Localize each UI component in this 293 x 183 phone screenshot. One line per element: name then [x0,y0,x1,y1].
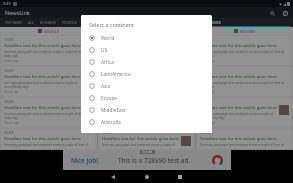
staticText: ENTERTAINMENT [103,20,131,25]
button[interactable]: SOURCE [2,67,95,96]
staticText: Headline text for this article goes here [4,43,81,49]
staticText: SCIENCE [207,20,221,25]
staticText: SOURCE [200,131,211,135]
staticText: GOOGLE [44,29,59,34]
button[interactable]: Search [268,9,276,17]
button[interactable]: SOURCE [2,98,95,127]
staticText: BUSINESS [40,20,56,25]
staticText: Test Ad [142,150,153,154]
staticText: Headline text for this article goes here [102,136,179,142]
staticText: Summary paragraph text continues across … [102,143,179,147]
staticText: 3 hours ago [4,121,19,125]
staticText: Headline text for this article goes here [102,43,179,49]
button[interactable]: SOCIETY [80,18,100,27]
button[interactable]: Back [108,172,118,182]
staticText: Summary paragraph text continues across … [4,143,93,147]
button[interactable]: POLITICS [59,18,80,27]
staticText: MiddleEast [101,107,126,114]
staticText: LatinAmerica [101,71,131,78]
staticText: Asia [101,83,111,90]
staticText: Europe [101,95,118,102]
button[interactable]: SOURCE [100,129,193,149]
staticText: Summary paragraph text continues across … [4,81,81,89]
button[interactable]: BUSINESS [37,18,59,27]
staticText: This is a 728x90 test ad. [118,156,191,165]
staticText: Australia [101,119,121,126]
staticText: Headline text for this article goes here [4,74,81,80]
staticText: Headline text for this article goes here [200,136,277,142]
button[interactable]: GOOGLE [0,27,97,35]
staticText: SOURCE [102,69,113,73]
staticText: Nice job! [71,156,98,165]
staticText: REUTERS [240,29,256,34]
staticText: SOURCE [102,131,113,135]
button[interactable]: SCIENCE [134,18,293,27]
staticText: SOCIETY [83,20,97,25]
staticText: Summary paragraph text continues across … [200,50,289,58]
button[interactable]: Test Ad [63,150,231,170]
staticText: Africa [101,59,114,66]
staticText: Select a continent [89,21,134,28]
button[interactable]: SOURCE [2,36,95,65]
button[interactable]: SOURCE [100,67,193,96]
staticText: Headline text for this article goes here [4,136,81,142]
staticText: Headline text for this article goes here [200,74,277,80]
button[interactable]: US [81,44,212,56]
staticText: SOURCE [4,100,15,104]
button[interactable]: SOURCE [198,67,291,96]
staticText: 3 hours ago [4,90,19,94]
staticText: Summary paragraph text continues across … [102,50,179,58]
button[interactable]: Europe [81,92,212,104]
staticText: US [101,47,108,54]
staticText: Headline text for this article goes here [102,74,179,80]
button[interactable]: SOURCE [2,129,95,149]
staticText: 3 hours ago [200,59,215,63]
staticText: 3 hours ago [4,59,19,63]
staticText: Summary paragraph text continues across … [200,143,289,147]
button[interactable]: Recent apps [175,172,185,182]
staticText: Summary paragraph text continues across … [200,112,277,120]
staticText: Headline text for this article goes here [200,43,277,49]
staticText: Headline text for this article goes here [102,105,179,111]
staticText: 3 hours ago [200,90,215,94]
button[interactable]: Africa [81,56,212,68]
button[interactable]: Home [142,172,152,182]
staticText: TOP NEWS [5,20,22,25]
button[interactable]: SOURCE [198,36,291,65]
staticText: 3 hours ago [102,121,117,125]
staticText: 7:41 [3,1,11,6]
button[interactable]: SOURCE [100,36,193,65]
staticText: Headline text for this article goes here [200,105,277,111]
button[interactable]: Asia [81,80,212,92]
staticText: POLITICS [62,20,77,25]
staticText: SOURCE [102,100,113,104]
button[interactable]: ALL [25,18,37,27]
button[interactable]: LatinAmerica [81,68,212,80]
button[interactable]: MiddleEast [81,104,212,116]
button[interactable]: TOP NEWS [2,18,25,27]
button[interactable]: REUTERS [196,27,293,35]
staticText: Headline text for this article goes here [4,105,81,111]
button[interactable]: Australia [81,116,212,128]
staticText: SOURCE [4,69,15,73]
staticText: ALL [28,20,34,25]
staticText: NewsLink [5,9,30,16]
button[interactable]: SOURCE [100,98,193,127]
button[interactable]: ENTERTAINMENT [100,18,134,27]
button[interactable]: Settings [281,9,289,17]
button[interactable]: SOURCE [198,98,291,127]
button[interactable]: SOURCE [198,129,291,149]
staticText: Summary paragraph text continues across … [102,81,191,89]
staticText: SOURCE [102,38,113,42]
staticText: World [101,35,115,42]
staticText: Summary paragraph text continues across … [200,81,289,89]
staticText: SOURCE [4,38,15,42]
button[interactable]: World [81,32,212,44]
staticText: 3 hours ago [200,121,215,125]
